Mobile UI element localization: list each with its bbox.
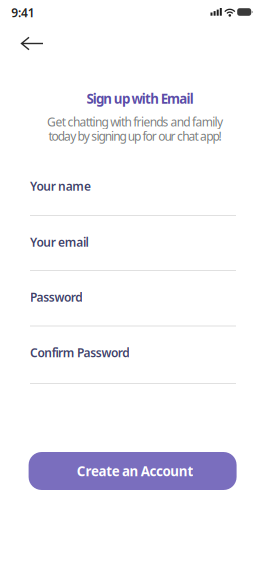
staticText: today by signing up for our chat app! [48, 128, 222, 144]
button[interactable]: Confirm Password [30, 340, 236, 384]
button[interactable]: Your name [30, 174, 236, 218]
staticText: Create an Account [77, 462, 193, 480]
button[interactable]: Create an Account [29, 452, 237, 490]
button[interactable]: Back [14, 29, 54, 57]
button[interactable]: Your email [30, 230, 236, 274]
staticText: Your email [30, 234, 89, 250]
staticText: Sign up with Email [86, 90, 194, 107]
button[interactable]: Password [30, 285, 236, 329]
staticText: 9:41 [11, 4, 35, 20]
staticText: Password [30, 289, 83, 305]
staticText: Your name [30, 178, 91, 194]
staticText: Confirm Password [30, 344, 130, 360]
staticText: Get chatting with friends and family [47, 114, 223, 130]
